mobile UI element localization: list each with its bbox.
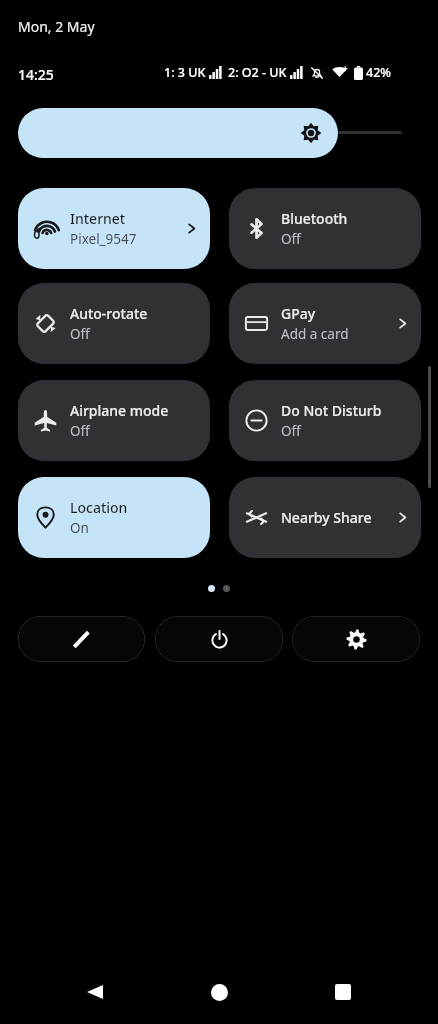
button[interactable]: Home <box>197 970 241 1014</box>
staticText: Location <box>70 498 128 517</box>
button[interactable]: Location <box>18 477 210 558</box>
staticText: 14:25 <box>18 65 54 84</box>
staticText: Off <box>281 422 301 440</box>
staticText: Add a card <box>281 325 349 343</box>
staticText: Off <box>70 325 90 343</box>
staticText: Internet <box>70 209 126 228</box>
staticText: 1: 3 UK <box>164 64 206 81</box>
staticText: On <box>70 519 89 537</box>
button[interactable]: Brightness <box>18 108 338 158</box>
button[interactable]: Settings <box>292 616 420 662</box>
button[interactable]: Bluetooth <box>229 188 421 269</box>
staticText: 2: O2 - UK <box>228 64 287 81</box>
staticText: GPay <box>281 304 316 323</box>
staticText: Off <box>281 230 301 248</box>
staticText: Auto-rotate <box>70 304 148 323</box>
button[interactable]: GPay <box>229 283 421 364</box>
staticText: Airplane mode <box>70 401 169 420</box>
staticText: Pixel_9547 <box>70 230 137 248</box>
button[interactable]: Recents <box>321 970 365 1014</box>
staticText: Bluetooth <box>281 209 348 228</box>
staticText: Mon, 2 May <box>18 17 95 36</box>
staticText: Off <box>70 422 90 440</box>
button[interactable]: Auto-rotate <box>18 283 210 364</box>
staticText: 42% <box>366 64 391 81</box>
button[interactable]: Power <box>155 616 283 662</box>
staticText: Nearby Share <box>281 508 372 527</box>
button[interactable]: Edit <box>18 616 145 662</box>
button[interactable]: Back <box>73 970 117 1014</box>
button[interactable]: Internet <box>18 188 210 269</box>
button[interactable]: Nearby Share <box>229 477 421 558</box>
button[interactable]: Airplane mode <box>18 380 210 461</box>
button[interactable]: Do Not Disturb <box>229 380 421 461</box>
staticText: Do Not Disturb <box>281 401 382 420</box>
